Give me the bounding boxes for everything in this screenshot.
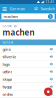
staticText: 12:45: [45, 0, 54, 4]
button[interactable]: Menu: [1, 4, 9, 13]
staticText: göra: [2, 46, 10, 52]
staticText: bygga: [2, 84, 12, 89]
button[interactable]: göra: [0, 45, 56, 53]
staticText: General: [2, 41, 13, 44]
staticText: machen: [3, 14, 17, 19]
staticText: skapa: [2, 76, 12, 82]
button[interactable]: Swedish: [40, 4, 55, 13]
staticText: German: [9, 6, 24, 11]
button[interactable]: skapa: [0, 75, 56, 83]
staticText: Swedish: [40, 6, 54, 11]
button[interactable]: tillverka: [0, 53, 56, 60]
button[interactable]: laga: [0, 60, 56, 68]
button[interactable]: Swap languages: [33, 4, 40, 13]
staticText: utföra: [2, 69, 12, 74]
staticText: ordna: [2, 91, 12, 97]
button[interactable]: Record: [44, 87, 52, 96]
button[interactable]: ordna: [0, 90, 56, 98]
staticText: laga: [2, 61, 9, 67]
button[interactable]: German: [9, 4, 25, 13]
button[interactable]: Search: [47, 13, 53, 19]
staticText: German: [2, 24, 12, 28]
button[interactable]: bygga: [0, 83, 56, 90]
staticText: machen: [2, 27, 34, 38]
button[interactable]: utföra: [0, 68, 56, 75]
staticText: tillverka: [2, 54, 16, 59]
